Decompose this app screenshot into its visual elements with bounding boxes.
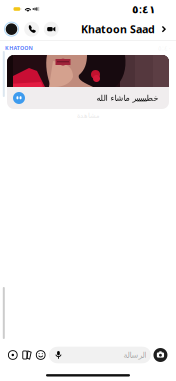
staticText: خطييييير ماشاء الله (96, 93, 158, 103)
button[interactable]: Profile (4, 22, 19, 37)
button[interactable]: Gallery (22, 347, 32, 363)
button[interactable]: Khatoon Saad (81, 22, 167, 36)
staticText: الرسالة (123, 350, 146, 360)
staticText: ٥:٤١ (132, 2, 156, 16)
button[interactable]: الرسالة (49, 347, 151, 363)
button[interactable]: Take photo (153, 347, 167, 363)
button[interactable]: Stickers (36, 347, 45, 363)
button[interactable]: Video call (44, 22, 59, 37)
staticText: مشاهدة (76, 112, 99, 119)
staticText: KHATOON (5, 44, 32, 52)
staticText: Khatoon Saad (81, 22, 155, 36)
button[interactable]: Camera (8, 347, 17, 363)
button[interactable]: Audio call (24, 22, 39, 37)
